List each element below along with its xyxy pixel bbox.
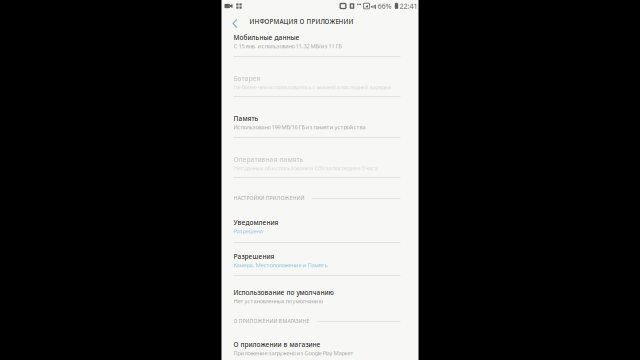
button[interactable]: Мобильные данные	[221, 29, 418, 56]
staticText: Использовано 199 МБ/16 ГБ из памяти устр…	[233, 123, 365, 131]
button[interactable]: Оперативная память	[221, 137, 418, 177]
staticText: О приложении в магазине	[233, 340, 320, 349]
staticText: Уведомления	[233, 218, 278, 227]
button[interactable]: О приложении в магазине	[221, 328, 418, 360]
staticText: Использование по умолчанию	[233, 288, 333, 297]
button[interactable]: Уведомления	[221, 205, 418, 242]
button[interactable]: Разрешения	[221, 242, 418, 275]
button[interactable]: Память	[221, 96, 418, 137]
staticText: Мобильные данные	[233, 33, 299, 42]
button[interactable]: Использование по умолчанию	[221, 275, 418, 312]
staticText: ИНФОРМАЦИЯ О ПРИЛОЖЕНИИ	[249, 17, 353, 26]
staticText: 22:41	[399, 1, 417, 11]
staticText: Разрешено	[233, 227, 262, 235]
staticText: Память	[233, 114, 258, 123]
staticText: О ПРИЛОЖЕНИИ В МАГАЗИНЕ	[233, 317, 309, 324]
button[interactable]: Батарея	[221, 56, 418, 96]
staticText: Оперативная память	[233, 155, 303, 164]
staticText: Батарея	[233, 74, 260, 83]
staticText: Приложение загружено из Google Play Марк…	[233, 349, 353, 357]
staticText: Нет установленных по умолчанию	[233, 297, 323, 305]
staticText: Камера, Местоположение и Память	[233, 261, 327, 269]
staticText: 66%	[377, 1, 391, 11]
button[interactable]: Назад	[225, 14, 245, 33]
staticText: НАСТРОЙКИ ПРИЛОЖЕНИЙ	[233, 194, 304, 201]
staticText: С 15 янв. использовано 11,32 МБ/из 11 ГБ	[233, 42, 341, 50]
staticText: Нет данных об использовании ОЗУ за после…	[233, 164, 377, 172]
staticText: Не более чем использовалось с момента по…	[233, 83, 391, 91]
staticText: Разрешения	[233, 252, 274, 261]
